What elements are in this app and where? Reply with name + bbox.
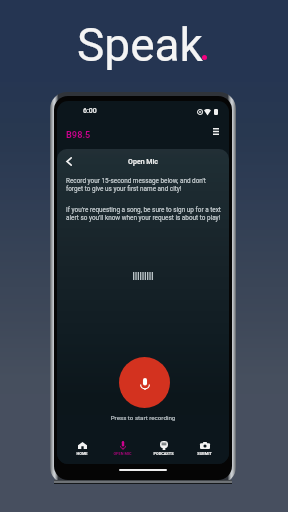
staticText: PODCASTS: [153, 451, 174, 456]
button[interactable]: SUBMIT: [184, 433, 225, 464]
button[interactable]: Start recording: [119, 357, 170, 408]
staticText: SUBMIT: [197, 451, 212, 456]
staticText: OPEN MIC: [113, 451, 132, 456]
button[interactable]: Back: [60, 152, 78, 170]
staticText: If you're requesting a song, be sure to …: [66, 206, 224, 222]
button[interactable]: Menu: [208, 123, 224, 139]
button[interactable]: PODCASTS: [143, 433, 184, 464]
button[interactable]: OPEN MIC: [102, 433, 143, 464]
staticText: HOME: [76, 451, 88, 456]
button[interactable]: HOME: [61, 433, 102, 464]
staticText: Open Mic: [57, 158, 229, 166]
staticText: Record your 15-second message below, and…: [66, 177, 224, 193]
staticText: B98.5: [66, 129, 91, 140]
staticText: Press to start recording: [57, 414, 229, 421]
staticText: Speak: [77, 18, 203, 72]
staticText: 6:00: [83, 107, 97, 115]
